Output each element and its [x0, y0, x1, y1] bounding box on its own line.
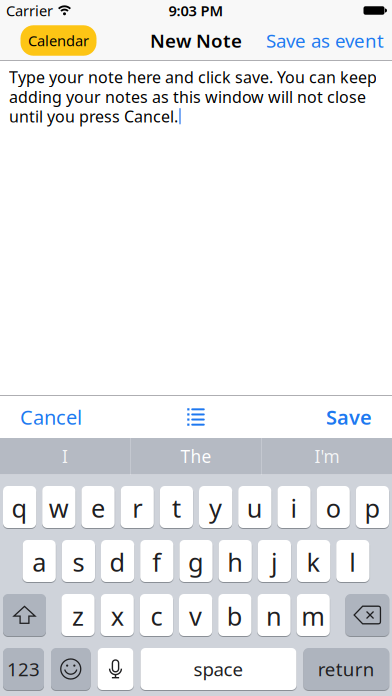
button[interactable]: Cancel — [20, 404, 82, 430]
button[interactable]: x — [101, 594, 134, 636]
staticText: Carrier — [6, 1, 53, 20]
staticText: r — [132, 491, 142, 525]
staticText: j — [271, 545, 278, 579]
staticText: t — [172, 491, 181, 525]
staticText: 9:03 PM — [168, 1, 223, 20]
staticText: i — [290, 491, 297, 525]
button[interactable]: z — [61, 594, 95, 636]
button[interactable] — [3, 594, 46, 636]
button[interactable]: return — [303, 648, 389, 690]
staticText: v — [189, 599, 202, 633]
staticText: I'm — [314, 445, 339, 468]
staticText: q — [12, 491, 28, 525]
staticText: y — [209, 491, 222, 525]
button[interactable]: g — [179, 540, 213, 582]
staticText: p — [364, 491, 380, 525]
button[interactable]: space — [140, 648, 296, 690]
staticText: Cancel — [20, 404, 82, 430]
button[interactable]: l — [336, 540, 369, 582]
staticText: space — [193, 657, 243, 681]
button[interactable]: w — [42, 486, 75, 528]
button[interactable]: n — [257, 594, 291, 636]
staticText: Save — [326, 404, 372, 430]
button[interactable] — [345, 594, 389, 636]
button[interactable] — [51, 648, 90, 690]
button[interactable]: Calendar — [20, 25, 96, 56]
button[interactable]: y — [199, 486, 232, 528]
staticText: m — [301, 599, 325, 633]
staticText: w — [49, 491, 69, 525]
staticText: l — [349, 545, 356, 579]
staticText: Calendar — [28, 31, 89, 50]
button[interactable]: q — [3, 486, 36, 528]
staticText: I — [62, 445, 68, 468]
button[interactable]: k — [297, 540, 330, 582]
button[interactable] — [187, 408, 205, 426]
staticText: a — [32, 545, 46, 579]
staticText: k — [307, 545, 321, 579]
staticText: 123 — [7, 657, 40, 681]
button[interactable]: a — [23, 540, 56, 582]
button[interactable]: d — [101, 540, 134, 582]
button[interactable]: c — [140, 594, 173, 636]
staticText: e — [91, 491, 105, 525]
staticText: New Note — [150, 28, 242, 53]
button[interactable]: m — [297, 594, 330, 636]
staticText: until you press Cancel. — [9, 106, 178, 127]
staticText: n — [266, 599, 282, 633]
staticText: u — [247, 491, 263, 525]
button[interactable]: p — [356, 486, 389, 528]
button[interactable]: I'm — [262, 438, 392, 474]
staticText: h — [227, 545, 243, 579]
button[interactable]: u — [238, 486, 271, 528]
button[interactable]: e — [81, 486, 115, 528]
button[interactable]: f — [140, 540, 173, 582]
staticText: g — [188, 545, 204, 579]
button[interactable] — [97, 648, 133, 690]
staticText: f — [152, 545, 161, 579]
button[interactable]: h — [219, 540, 252, 582]
staticText: b — [227, 599, 243, 633]
staticText: x — [111, 599, 124, 633]
button[interactable]: Save as event — [266, 28, 384, 53]
staticText: The — [180, 445, 211, 468]
staticText: d — [110, 545, 126, 579]
staticText: c — [150, 599, 162, 633]
button[interactable]: t — [160, 486, 193, 528]
button[interactable]: s — [62, 540, 95, 582]
button[interactable]: o — [317, 486, 350, 528]
staticText: z — [72, 599, 84, 633]
button[interactable]: The — [131, 438, 261, 474]
button[interactable]: v — [179, 594, 212, 636]
staticText: adding your notes as this window will no… — [9, 86, 366, 107]
staticText: o — [326, 491, 341, 525]
button[interactable]: b — [218, 594, 251, 636]
staticText: Type your note here and click save. You … — [9, 66, 377, 88]
staticText: Save as event — [266, 28, 384, 53]
button[interactable]: I — [0, 438, 130, 474]
staticText: return — [318, 657, 375, 681]
button[interactable]: i — [277, 486, 311, 528]
button[interactable]: j — [258, 540, 291, 582]
button[interactable]: 123 — [3, 648, 44, 690]
button[interactable]: r — [121, 486, 154, 528]
button[interactable]: Save — [326, 404, 372, 430]
staticText: s — [72, 545, 84, 579]
